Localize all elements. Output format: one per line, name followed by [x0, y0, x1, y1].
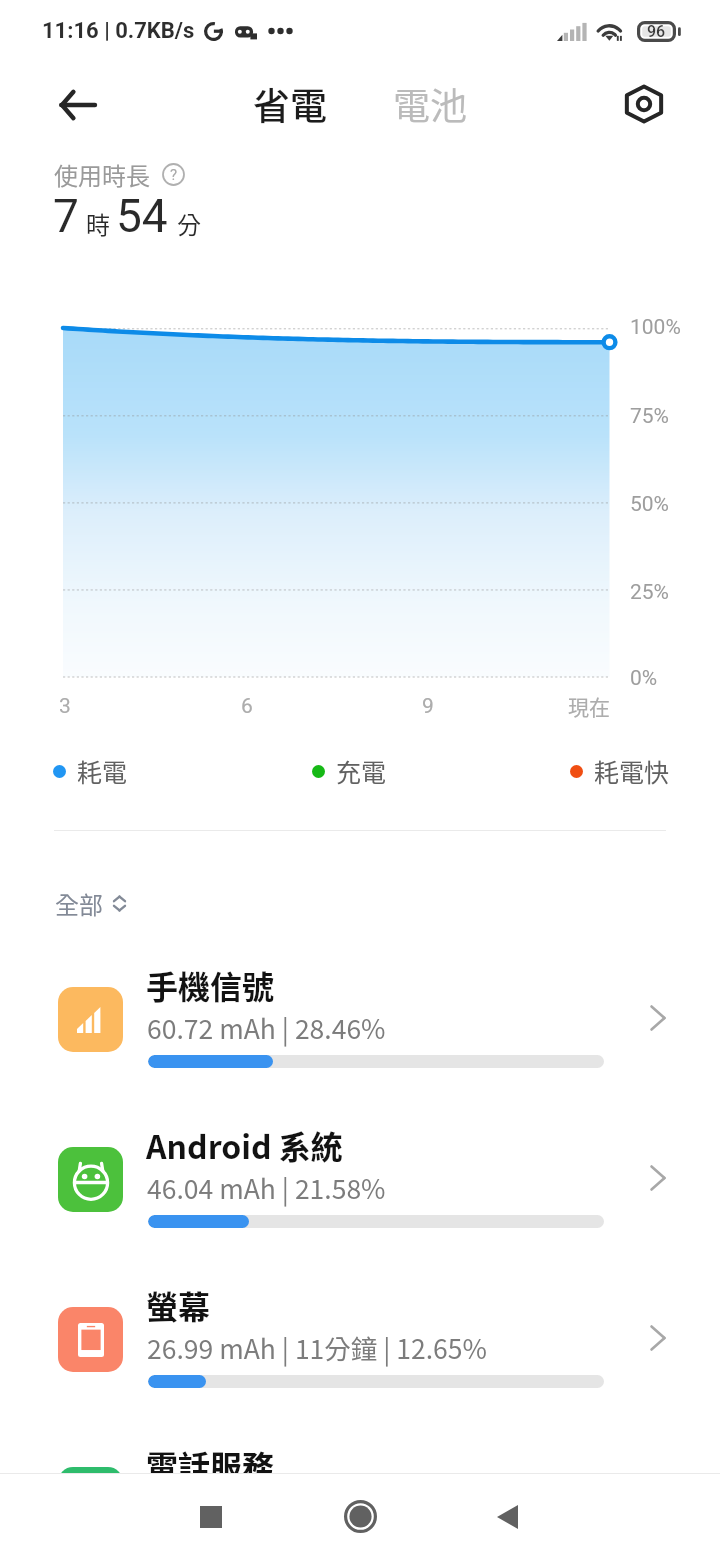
- staticText: 6: [241, 694, 253, 719]
- button[interactable]: 電話服務: [0, 1435, 720, 1560]
- staticText: 電池: [393, 77, 467, 131]
- staticText: 26.99 mAh | 11分鐘 | 12.65%: [147, 1328, 487, 1366]
- staticText: 耗電: [77, 753, 128, 789]
- staticText: 75%: [630, 404, 669, 429]
- staticText: 50%: [630, 492, 669, 517]
- button[interactable]: 螢幕: [0, 1275, 720, 1435]
- button[interactable]: Back: [471, 1480, 544, 1553]
- staticText: 100%: [630, 315, 681, 340]
- button[interactable]: Home: [324, 1480, 397, 1553]
- staticText: 分: [177, 206, 201, 241]
- button[interactable]: Recents: [174, 1480, 247, 1553]
- staticText: 3: [59, 694, 71, 719]
- staticText: 54: [116, 189, 168, 243]
- staticText: 使用時長: [54, 157, 150, 192]
- button[interactable]: 省電: [249, 73, 331, 135]
- button[interactable]: Back: [47, 74, 109, 136]
- staticText: 螢幕: [146, 1282, 211, 1328]
- staticText: 現在: [568, 691, 610, 721]
- staticText: 7: [53, 189, 79, 243]
- staticText: 0%: [630, 666, 658, 691]
- staticText: 電話服務: [146, 1442, 275, 1488]
- staticText: 25%: [630, 580, 669, 605]
- button[interactable]: 全部: [51, 882, 131, 925]
- staticText: 手機信號: [146, 962, 275, 1008]
- button[interactable]: 電池: [389, 73, 471, 135]
- button[interactable]: Android 系統: [0, 1115, 720, 1275]
- staticText: 省電: [253, 77, 327, 131]
- staticText: 時: [86, 206, 110, 241]
- staticText: 9: [422, 694, 434, 719]
- staticText: Android 系統: [146, 1122, 343, 1168]
- staticText: 20.11 mAh | 9.43%: [147, 1488, 371, 1526]
- button[interactable]: 手機信號: [0, 955, 720, 1115]
- staticText: 96: [647, 22, 666, 41]
- staticText: 46.04 mAh | 21.58%: [147, 1168, 386, 1206]
- staticText: 60.72 mAh | 28.46%: [147, 1008, 386, 1046]
- staticText: 11:16 | 0.7KB/s: [42, 18, 195, 44]
- staticText: 充電: [336, 753, 387, 789]
- button[interactable]: Settings: [614, 74, 674, 134]
- staticText: 全部: [55, 886, 103, 921]
- staticText: ?: [170, 166, 178, 184]
- staticText: 耗電快: [594, 753, 670, 789]
